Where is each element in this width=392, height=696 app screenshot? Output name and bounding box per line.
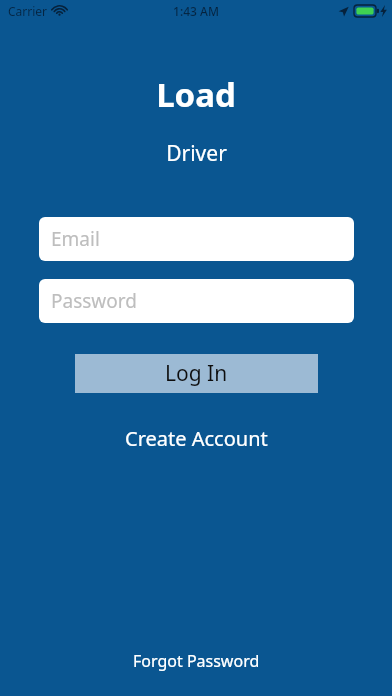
staticText: Log In <box>165 359 228 388</box>
staticText: Carrier <box>8 3 48 19</box>
button[interactable]: Email <box>39 217 354 261</box>
staticText: Forgot Password <box>133 650 260 672</box>
button[interactable]: Forgot Password <box>119 644 274 678</box>
staticText: Password <box>51 288 137 314</box>
button[interactable]: Password <box>39 279 354 323</box>
button[interactable]: Create Account <box>109 418 284 459</box>
staticText: Driver <box>166 139 227 168</box>
staticText: Email <box>51 226 100 252</box>
staticText: Create Account <box>125 425 268 452</box>
staticText: 1:43 AM <box>173 3 219 19</box>
staticText: Load <box>156 72 236 117</box>
button[interactable]: Log In <box>75 354 318 393</box>
